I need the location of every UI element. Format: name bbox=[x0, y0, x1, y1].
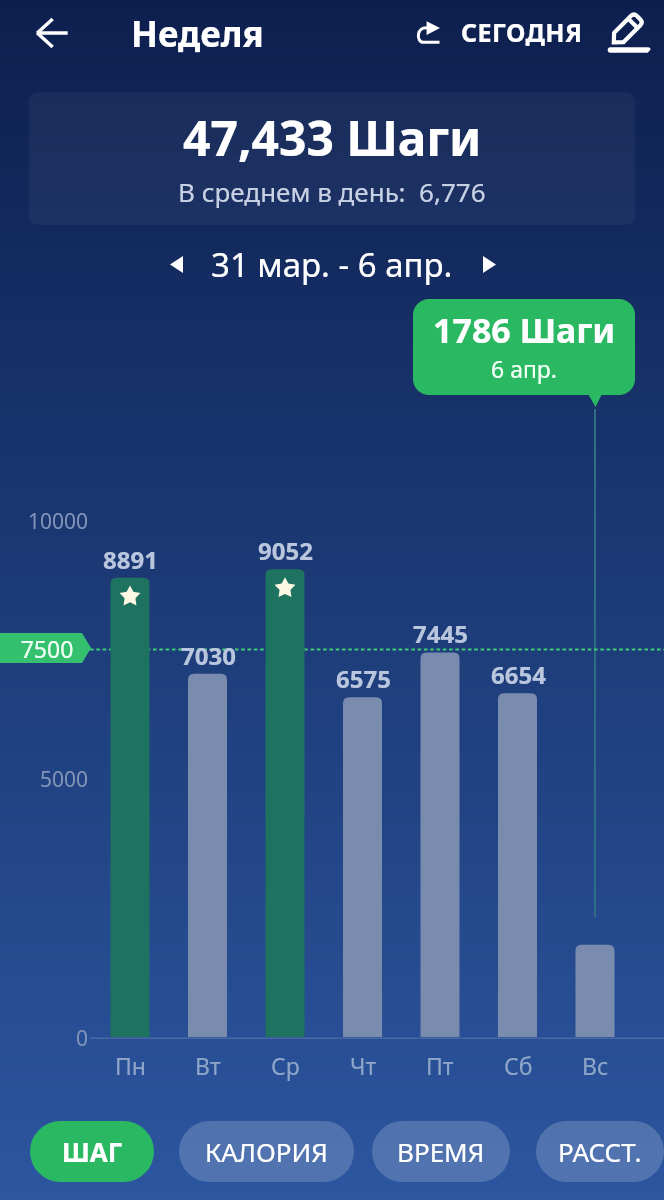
button[interactable]: 47,433 Шаги bbox=[29, 92, 635, 225]
staticText: Вт bbox=[195, 1050, 221, 1081]
staticText: Неделя bbox=[131, 10, 264, 58]
staticText: Ср bbox=[271, 1050, 300, 1081]
staticText: 7445 bbox=[413, 617, 468, 650]
staticText: Чт bbox=[350, 1050, 377, 1081]
button[interactable]: Back bbox=[24, 5, 80, 61]
staticText: В среднем в день: 6,776 bbox=[178, 174, 486, 209]
staticText: 47,433 Шаги bbox=[183, 105, 482, 170]
staticText: 7500 bbox=[6, 633, 88, 663]
staticText: 10000 bbox=[28, 507, 89, 536]
staticText: КАЛОРИЯ bbox=[205, 1134, 328, 1169]
staticText: 6654 bbox=[491, 658, 546, 691]
button[interactable]: СЕГОДНЯ bbox=[408, 4, 591, 60]
staticText: ШАГ bbox=[62, 1134, 123, 1169]
staticText: 0 bbox=[76, 1024, 89, 1053]
staticText: Пн bbox=[115, 1050, 146, 1081]
button[interactable]: Next week bbox=[467, 242, 511, 286]
staticText: 6 апр. bbox=[491, 353, 558, 384]
button[interactable]: Неделя bbox=[127, 2, 268, 66]
staticText: 9052 bbox=[258, 534, 313, 567]
button[interactable]: КАЛОРИЯ bbox=[179, 1121, 354, 1182]
staticText: РАССТ. bbox=[558, 1134, 642, 1169]
staticText: 5000 bbox=[40, 765, 89, 794]
button[interactable]: Edit bbox=[600, 5, 656, 61]
staticText: Вс bbox=[582, 1050, 609, 1081]
staticText: СЕГОДНЯ bbox=[461, 15, 583, 49]
staticText: 1786 Шаги bbox=[433, 307, 616, 353]
button[interactable]: РАССТ. bbox=[536, 1121, 664, 1182]
staticText: 31 мар. - 6 апр. bbox=[211, 242, 453, 287]
button[interactable]: 1786 Шаги bbox=[413, 299, 635, 395]
button[interactable]: Goal 7500 bbox=[0, 633, 91, 663]
button[interactable]: ВРЕМЯ bbox=[372, 1121, 510, 1182]
staticText: 8891 bbox=[103, 543, 158, 576]
staticText: ВРЕМЯ bbox=[397, 1134, 485, 1169]
staticText: Пт bbox=[426, 1050, 454, 1081]
staticText: 7030 bbox=[181, 639, 236, 672]
staticText: Сб bbox=[504, 1050, 533, 1081]
button[interactable]: Previous week bbox=[154, 242, 198, 286]
button[interactable]: ШАГ bbox=[30, 1121, 154, 1182]
staticText: 6575 bbox=[336, 662, 391, 695]
